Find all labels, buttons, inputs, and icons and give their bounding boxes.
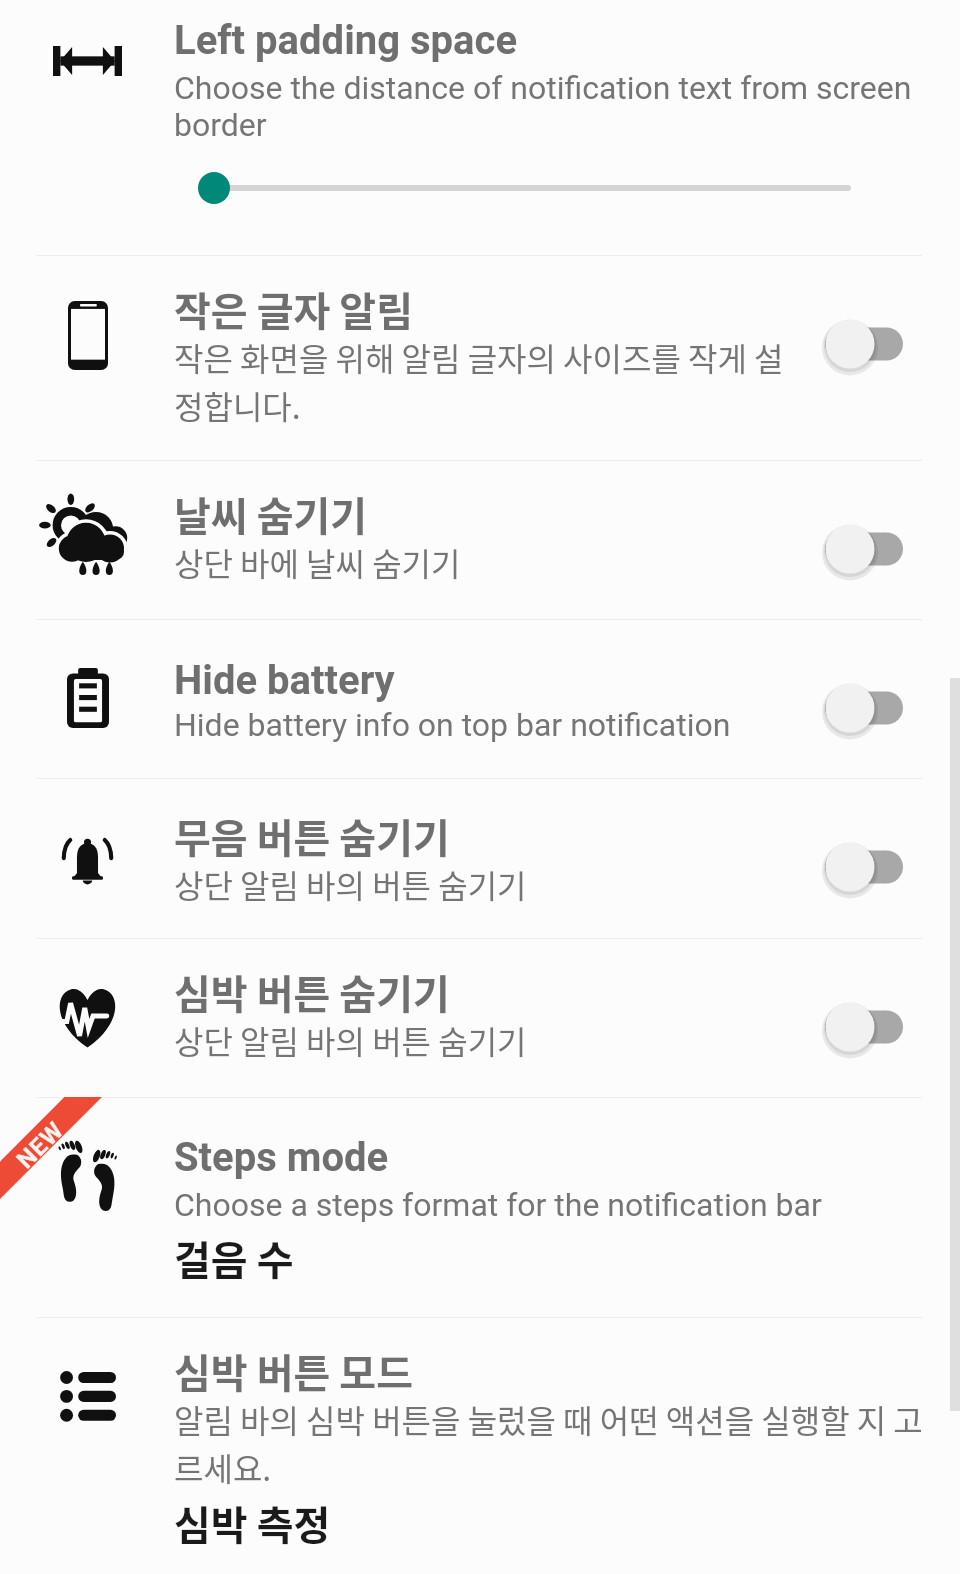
staticText: 상단 알림 바의 버튼 숨기기: [174, 1016, 926, 1064]
staticText: 무음 버튼 숨기기: [174, 817, 926, 862]
staticText: Steps mode: [174, 1135, 926, 1180]
button[interactable]: Left padding space: [0, 0, 960, 255]
staticText: 심박 버튼 모드: [174, 1352, 926, 1397]
staticText: 작은 글자 알림: [174, 290, 926, 335]
staticText: 상단 바에 날씨 숨기기: [174, 538, 926, 586]
button[interactable]: Toggle 날씨 숨기기: [790, 460, 960, 619]
button[interactable]: 심박 버튼 숨기기: [0, 938, 960, 1097]
button[interactable]: Steps mode: [0, 1097, 960, 1317]
button[interactable]: 무음 버튼 숨기기: [0, 778, 960, 938]
staticText: Choose a steps format for the notificati…: [174, 1187, 926, 1224]
button[interactable]: Toggle 심박 버튼 숨기기: [790, 938, 960, 1097]
button[interactable]: Toggle Hide battery: [790, 619, 960, 778]
staticText: 작은 화면을 위해 알림 글자의 사이즈를 작게 설정합니다.: [174, 333, 790, 429]
staticText: 날씨 숨기기: [174, 495, 926, 540]
staticText: 걸음 수: [174, 1233, 926, 1285]
staticText: Choose the distance of notification text…: [174, 70, 926, 144]
other: Padding slider: [0, 0, 960, 255]
button[interactable]: 작은 글자 알림: [0, 255, 960, 460]
staticText: 심박 측정: [174, 1498, 926, 1550]
button[interactable]: 심박 버튼 모드: [0, 1317, 960, 1574]
staticText: NEW: [11, 1116, 70, 1174]
button[interactable]: Toggle 무음 버튼 숨기기: [790, 778, 960, 938]
staticText: Hide battery info on top bar notificatio…: [174, 707, 926, 744]
button[interactable]: Hide battery: [0, 619, 960, 778]
button[interactable]: 날씨 숨기기: [0, 460, 960, 619]
button[interactable]: Toggle 작은 글자 알림: [790, 255, 960, 460]
staticText: Hide battery: [174, 658, 926, 703]
staticText: 상단 알림 바의 버튼 숨기기: [174, 860, 926, 908]
staticText: Left padding space: [174, 18, 926, 63]
staticText: 심박 버튼 숨기기: [174, 973, 926, 1018]
staticText: 알림 바의 심박 버튼을 눌렀을 때 어떤 액션을 실행할 지 고르세요.: [174, 1395, 926, 1491]
